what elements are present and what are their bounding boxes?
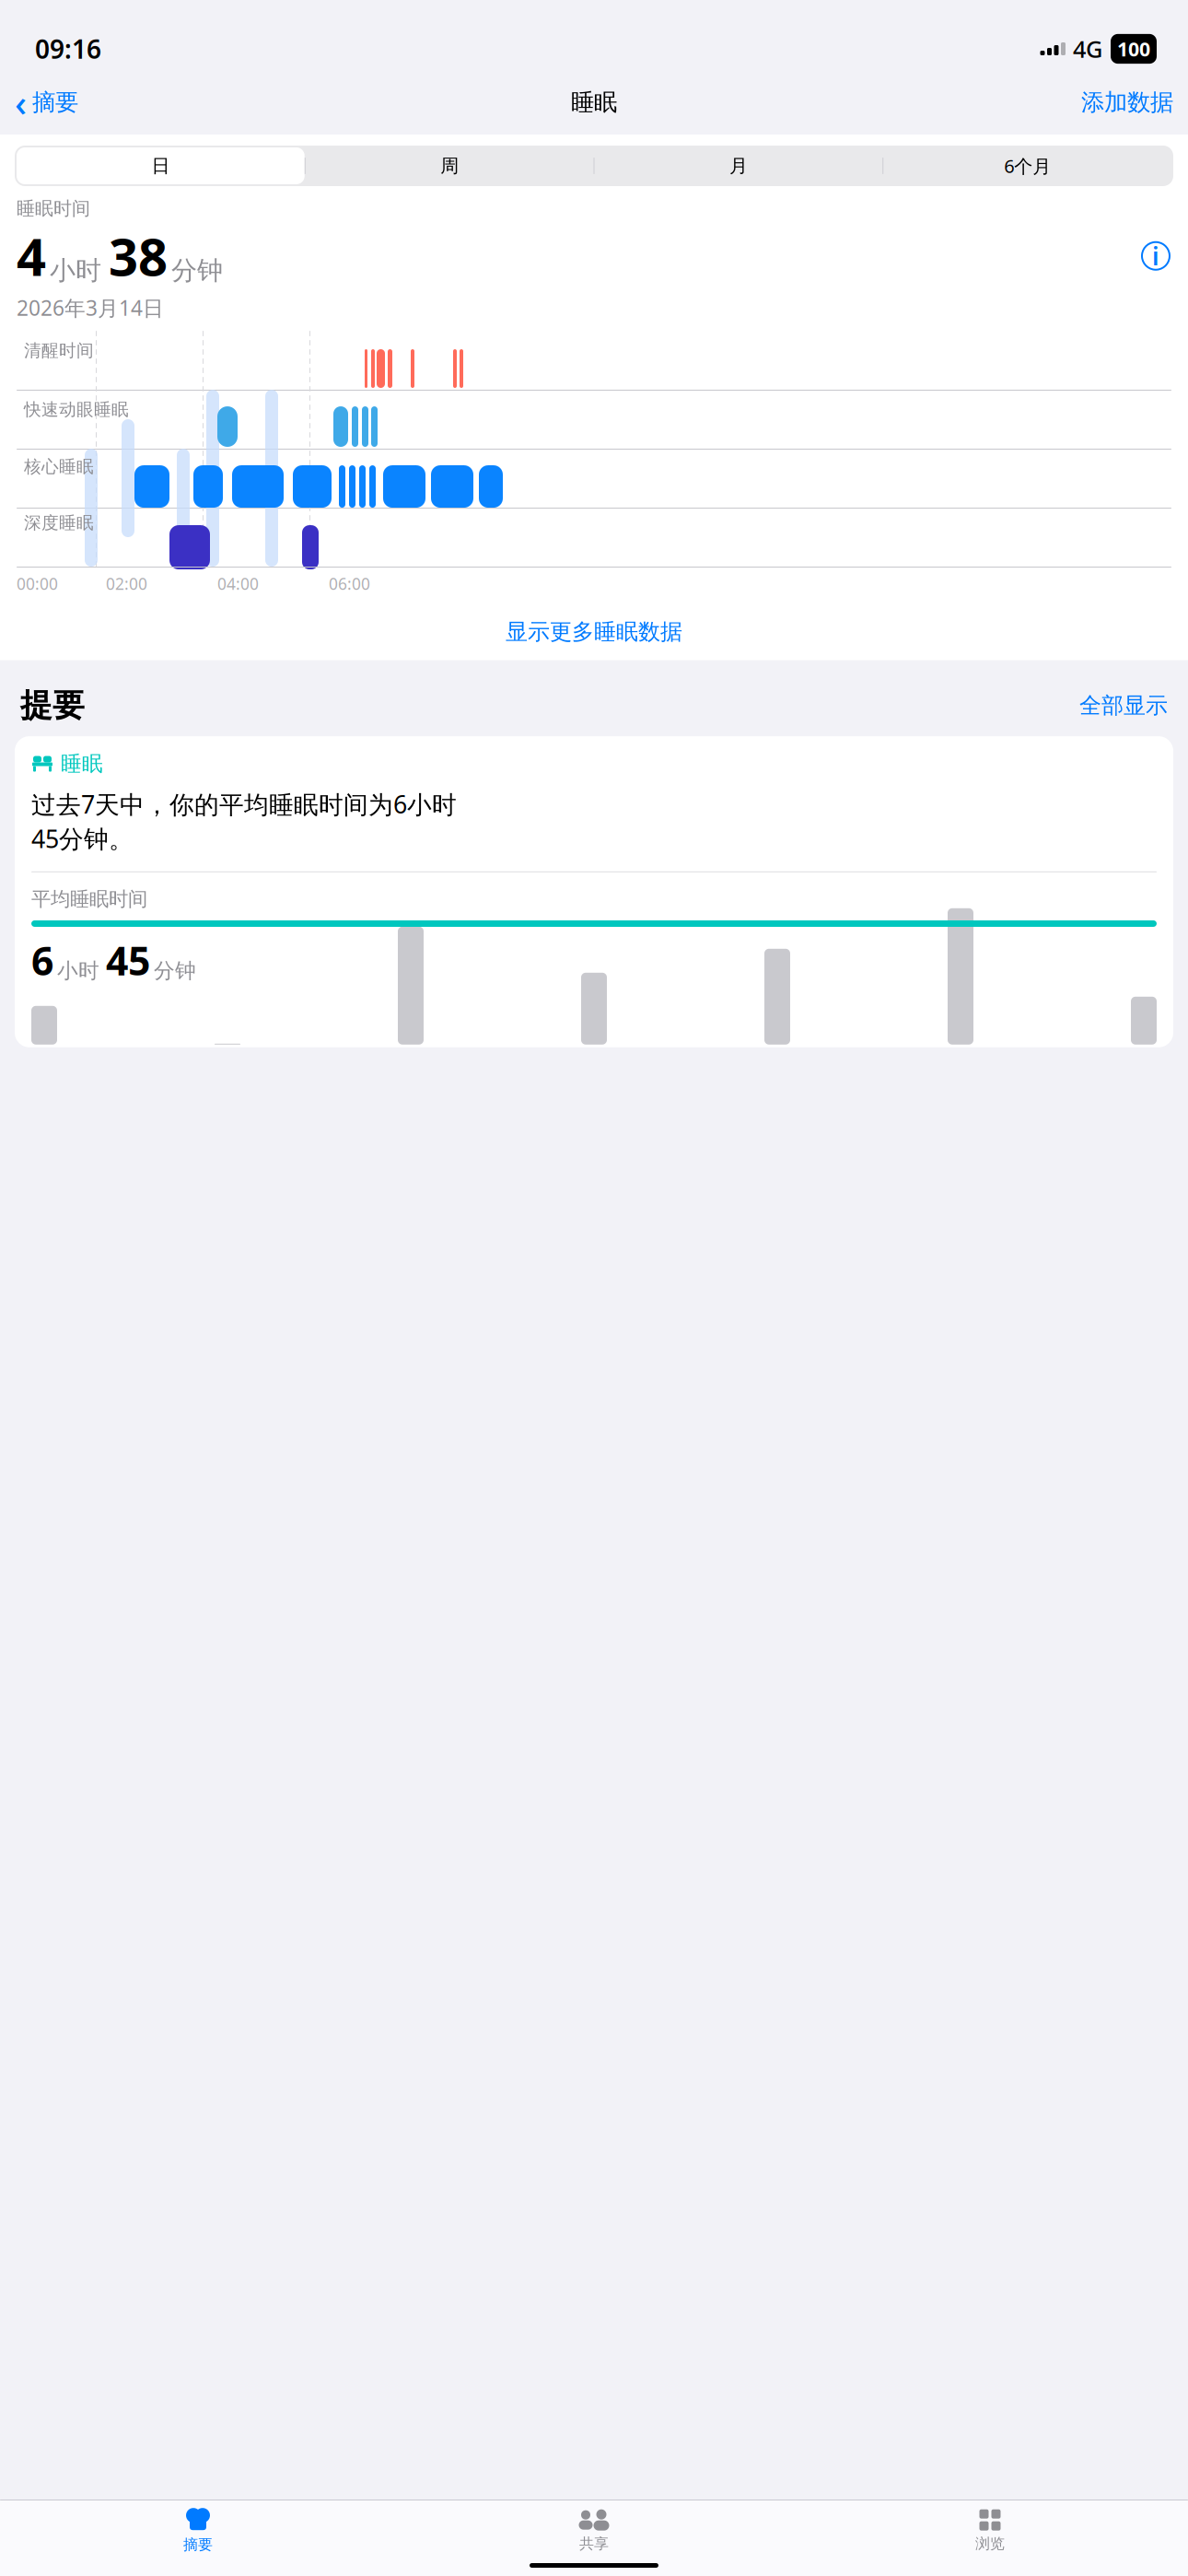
button[interactable]: 日 bbox=[17, 147, 305, 184]
staticText: 摘要 bbox=[32, 88, 78, 117]
staticText: 小时 bbox=[57, 958, 99, 984]
staticText: 月 bbox=[729, 155, 748, 177]
button[interactable]: 浏览 bbox=[792, 2502, 1188, 2553]
staticText: 提要 bbox=[20, 686, 85, 725]
staticText: 分钟 bbox=[154, 958, 196, 984]
staticText: 100 bbox=[1117, 36, 1150, 62]
staticText: 摘要 bbox=[183, 2536, 213, 2554]
staticText: 45分钟。 bbox=[31, 822, 134, 855]
staticText: 清醒时间 bbox=[24, 340, 94, 361]
staticText: ‹ bbox=[15, 78, 27, 127]
staticText: 睡眠 bbox=[61, 751, 103, 777]
button[interactable]: 摘要 bbox=[0, 2501, 396, 2554]
staticText: 显示更多睡眠数据 bbox=[506, 618, 682, 645]
staticText: 00:00 bbox=[17, 573, 58, 594]
staticText: 02:00 bbox=[106, 573, 147, 594]
staticText: 快速动眼睡眠 bbox=[24, 399, 129, 420]
staticText: 全部显示 bbox=[1079, 692, 1168, 719]
staticText: 平均睡眠时间 bbox=[31, 887, 147, 911]
staticText: 6个月 bbox=[1004, 154, 1051, 178]
staticText: 浏览 bbox=[975, 2535, 1005, 2553]
staticText: 09:16 bbox=[35, 32, 101, 66]
staticText: 6 bbox=[31, 934, 53, 986]
staticText: 日 bbox=[151, 155, 170, 177]
staticText: 睡眠时间 bbox=[17, 197, 90, 220]
staticText: 睡眠 bbox=[571, 88, 617, 117]
staticText: 添加数据 bbox=[1081, 88, 1173, 117]
staticText: 核心睡眠 bbox=[24, 456, 94, 477]
staticText: 2026年3月14日 bbox=[17, 294, 164, 322]
staticText: 过去7天中，你的平均睡眠时间为6小时 bbox=[31, 788, 457, 820]
staticText: 06:00 bbox=[329, 573, 370, 594]
staticText: 38 bbox=[109, 222, 168, 290]
staticText: 深度睡眠 bbox=[24, 512, 94, 533]
staticText: 04:00 bbox=[217, 573, 259, 594]
button[interactable]: ‹ bbox=[0, 72, 78, 132]
staticText: i bbox=[1152, 240, 1159, 272]
button[interactable]: 显示更多睡眠数据 bbox=[0, 604, 1188, 660]
staticText: 周 bbox=[440, 155, 459, 177]
staticText: 4G bbox=[1073, 33, 1102, 64]
staticText: 45 bbox=[106, 934, 150, 986]
button[interactable]: 月 bbox=[594, 147, 883, 184]
button[interactable]: 添加数据 bbox=[1081, 82, 1188, 122]
staticText: 4 bbox=[17, 222, 46, 290]
button[interactable]: 周 bbox=[306, 147, 594, 184]
button[interactable]: 共享 bbox=[396, 2502, 792, 2553]
button[interactable]: 6个月 bbox=[883, 147, 1171, 184]
button[interactable]: 关于睡眠时间 bbox=[1142, 242, 1188, 270]
button[interactable]: 全部显示 bbox=[1079, 692, 1168, 719]
staticText: 小时 bbox=[50, 255, 101, 286]
staticText: 分钟 bbox=[171, 255, 223, 286]
staticText: 共享 bbox=[579, 2535, 609, 2553]
